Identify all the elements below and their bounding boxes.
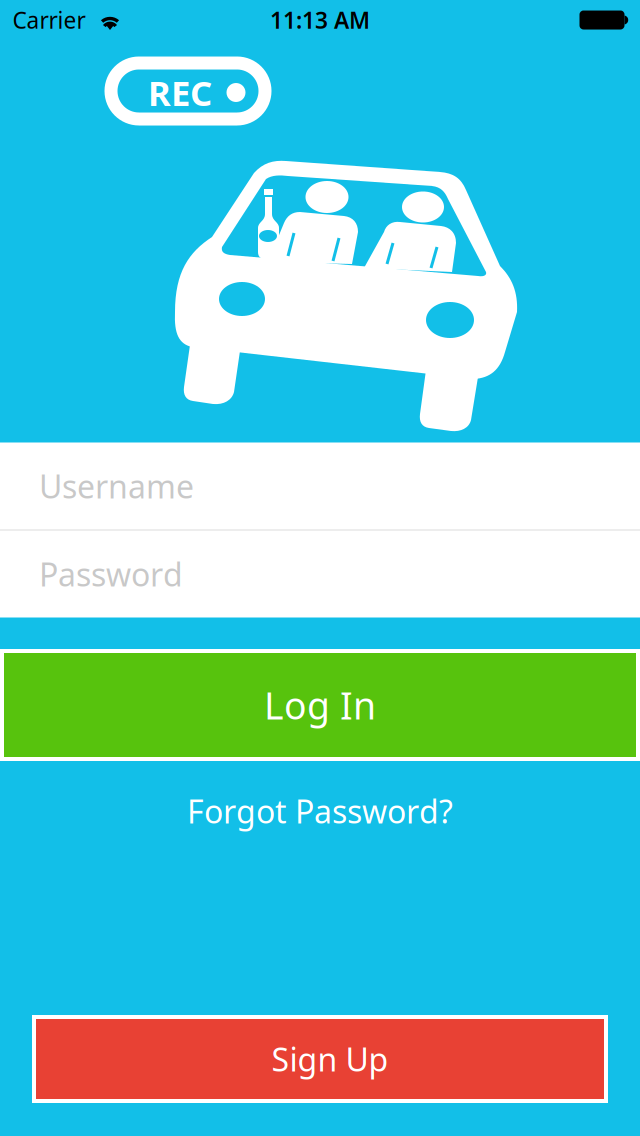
button[interactable]: Forgot Password?: [120, 780, 520, 842]
staticText: Forgot Password?: [187, 790, 453, 832]
staticText: Sign Up: [271, 1038, 388, 1080]
button[interactable]: Sign Up: [32, 1015, 608, 1103]
staticText: 11:13 AM: [270, 5, 370, 35]
button[interactable]: Username: [0, 442, 640, 529]
staticText: Log In: [264, 680, 376, 730]
staticText: Username: [39, 465, 194, 507]
staticText: REC: [148, 69, 212, 115]
button[interactable]: Log In: [0, 649, 640, 761]
button[interactable]: Password: [0, 530, 640, 617]
staticText: Carrier: [12, 5, 85, 35]
staticText: Password: [39, 553, 183, 595]
